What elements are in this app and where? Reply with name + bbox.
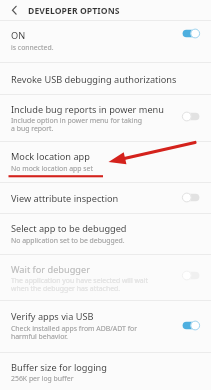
staticText: Verify apps via USB (11, 310, 94, 323)
button[interactable]: ON (0, 21, 211, 62)
staticText: Wait for debugger (11, 263, 90, 276)
staticText: Include bug reports in power menu (11, 103, 164, 116)
staticText: ON (11, 29, 26, 42)
staticText: 256K per log buffer (11, 374, 74, 383)
button[interactable]: View attribute inspection (0, 183, 211, 213)
staticText: Buffer size for logging (11, 361, 107, 374)
staticText: Check installed apps from ADB/ADT for ha… (11, 324, 138, 341)
button[interactable]: Switch off (182, 270, 200, 281)
button[interactable]: Mock location app (0, 142, 211, 182)
button[interactable]: Switch off (182, 111, 200, 122)
button[interactable]: Switch off (182, 192, 200, 203)
staticText: Revoke USB debugging authorizations (11, 73, 177, 86)
staticText: No mock location app set (11, 164, 93, 173)
button[interactable]: Verify apps via USB (0, 301, 211, 352)
staticText: Select app to be debugged (11, 222, 127, 235)
button[interactable]: Buffer size for logging (0, 353, 211, 390)
staticText: View attribute inspection (11, 192, 119, 205)
staticText: DEVELOPER OPTIONS (28, 5, 120, 17)
staticText: Mock location app (11, 150, 90, 163)
button[interactable]: Revoke USB debugging authorizations (0, 63, 211, 94)
button[interactable]: Include bug reports in power menu (0, 95, 211, 141)
button[interactable]: Switch on (182, 28, 200, 39)
button[interactable]: Select app to be debugged (0, 214, 211, 254)
button[interactable]: Wait for debugger (0, 255, 211, 300)
staticText: Include option in power menu for taking … (11, 116, 142, 133)
staticText: The application you have selected will w… (11, 276, 149, 293)
staticText: No application set to be debugged. (11, 236, 125, 245)
staticText: is connected. (11, 43, 54, 52)
button[interactable]: Navigate up (0, 0, 25, 20)
button[interactable]: Switch on (182, 320, 200, 331)
